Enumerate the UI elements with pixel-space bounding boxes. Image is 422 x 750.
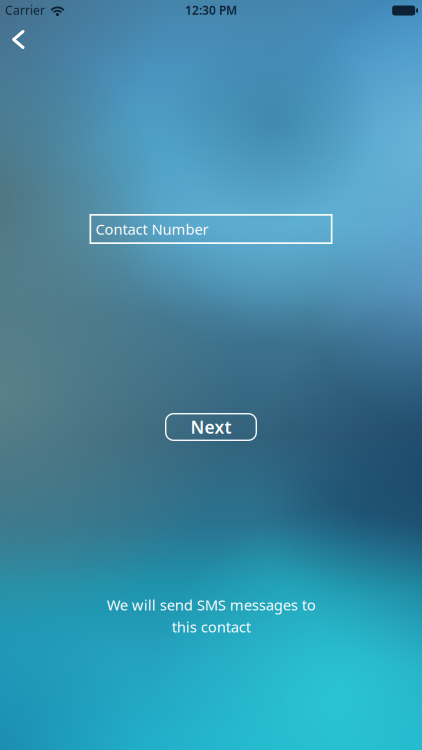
button[interactable]: Next [165, 413, 257, 441]
staticText: Contact Number [95, 219, 208, 239]
button[interactable]: Back [4, 26, 32, 53]
staticText: Carrier [5, 2, 45, 18]
staticText: We will send SMS messages to this contac… [106, 595, 315, 636]
staticText: Next [190, 415, 231, 438]
staticText: 12:30 PM [185, 2, 237, 18]
button[interactable]: Contact Number [89, 214, 332, 244]
